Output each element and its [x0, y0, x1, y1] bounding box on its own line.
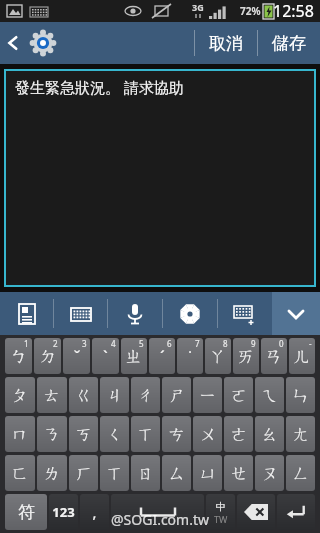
button[interactable]: ㄞ	[233, 338, 259, 374]
staticText: 取消	[209, 33, 243, 54]
staticText: 儲存	[272, 33, 306, 54]
staticText: ㄓ	[125, 346, 143, 367]
staticText: 發生緊急狀況。 請求協助	[15, 77, 184, 97]
button[interactable]: ㄊ	[37, 377, 67, 413]
button[interactable]: ㄜ	[224, 416, 253, 452]
staticText: ㄑ	[106, 424, 124, 445]
button[interactable]: ㄌ	[37, 455, 67, 491]
button[interactable]: ㄕ	[162, 377, 191, 413]
button[interactable]: ㄔ	[131, 377, 160, 413]
button[interactable]: ㄒ	[131, 416, 160, 452]
staticText: ㄝ	[230, 463, 248, 484]
staticText: ㄖ	[137, 463, 155, 484]
button[interactable]: Enter	[277, 494, 315, 530]
staticText: ㄙ	[168, 463, 186, 484]
staticText: ㄎ	[75, 424, 93, 445]
staticText: TW	[214, 513, 228, 525]
button[interactable]: 取消	[195, 22, 257, 64]
staticText: ㄣ	[292, 385, 310, 406]
button[interactable]: ˋ	[92, 338, 119, 374]
staticText: 3G	[192, 1, 204, 13]
button[interactable]: Space	[111, 494, 204, 530]
button[interactable]: ˇ	[63, 338, 90, 374]
button[interactable]: ㄇ	[5, 416, 35, 452]
button[interactable]: ㄅ	[5, 338, 32, 374]
button[interactable]: Hide keyboard	[272, 292, 320, 335]
button[interactable]: ㄏ	[69, 455, 98, 491]
staticText: ㄆ	[11, 385, 29, 406]
button[interactable]: ㄤ	[286, 416, 315, 452]
button[interactable]: ㄛ	[224, 377, 253, 413]
button[interactable]: ˊ	[149, 338, 175, 374]
staticText: ㄚ	[209, 346, 227, 367]
button[interactable]: 發生緊急狀況。 請求協助	[6, 71, 314, 285]
button[interactable]: ㄢ	[261, 338, 287, 374]
button[interactable]: ㄒ	[100, 455, 129, 491]
staticText: ㄨ	[199, 424, 217, 445]
button[interactable]: Settings	[163, 292, 217, 335]
button[interactable]: ㄓ	[121, 338, 147, 374]
button[interactable]: 符	[5, 494, 47, 530]
button[interactable]: ㄦ	[289, 338, 315, 374]
button[interactable]: ㄈ	[5, 455, 35, 491]
button[interactable]: Clipboard	[0, 292, 53, 335]
button[interactable]: Keyboard	[54, 292, 107, 335]
button[interactable]: ˙	[177, 338, 203, 374]
button[interactable]: ㄚ	[205, 338, 231, 374]
button[interactable]: ,	[80, 494, 109, 530]
staticText: ㄌ	[43, 463, 61, 484]
button[interactable]: 儲存	[258, 22, 320, 64]
staticText: ㄐ	[106, 385, 124, 406]
button[interactable]: ㄘ	[162, 416, 191, 452]
button[interactable]: ㄥ	[286, 455, 315, 491]
button[interactable]: Backspace	[237, 494, 275, 530]
staticText: ㄞ	[237, 346, 255, 367]
staticText: 符	[18, 502, 35, 523]
button[interactable]: Chinese / TW	[206, 494, 235, 530]
button[interactable]: ㄡ	[255, 455, 284, 491]
staticText: ㄒ	[137, 424, 155, 445]
staticText: ㄤ	[292, 424, 310, 445]
staticText: ˙	[188, 345, 192, 368]
button[interactable]: Back	[0, 22, 26, 64]
button[interactable]: ㄩ	[193, 455, 222, 491]
button[interactable]: ㄑ	[100, 416, 129, 452]
button[interactable]: ㄖ	[131, 455, 160, 491]
staticText: 2	[53, 338, 58, 349]
staticText: 12:58	[273, 0, 314, 22]
button[interactable]: Voice input	[108, 292, 162, 335]
staticText: ㄇ	[11, 424, 29, 445]
staticText: ㄏ	[75, 463, 93, 484]
button[interactable]: ㄧ	[193, 377, 222, 413]
staticText: ㄛ	[230, 385, 248, 406]
staticText: 8	[223, 338, 228, 349]
staticText: ㄘ	[168, 424, 186, 445]
staticText: 5	[139, 338, 144, 349]
button[interactable]: Settings	[26, 26, 60, 60]
button[interactable]: Floating keyboard	[218, 292, 272, 335]
button[interactable]: ㄎ	[69, 416, 98, 452]
button[interactable]: ㄝ	[224, 455, 253, 491]
staticText: ㄡ	[261, 463, 279, 484]
staticText: ˊ	[160, 345, 165, 368]
staticText: ㄜ	[230, 424, 248, 445]
button[interactable]: ㄙ	[162, 455, 191, 491]
button[interactable]: 123	[49, 494, 78, 530]
button[interactable]: ㄣ	[286, 377, 315, 413]
staticText: -	[309, 338, 312, 349]
button[interactable]: ㄐ	[100, 377, 129, 413]
button[interactable]: ㄆ	[5, 377, 35, 413]
staticText: ㄕ	[168, 385, 186, 406]
button[interactable]: ㄉ	[34, 338, 61, 374]
button[interactable]: ㄟ	[255, 377, 284, 413]
button[interactable]: ㄋ	[37, 416, 67, 452]
staticText: 123	[52, 503, 75, 521]
staticText: ㄠ	[261, 424, 279, 445]
staticText: ˇ	[73, 345, 81, 368]
button[interactable]: ㄨ	[193, 416, 222, 452]
button[interactable]: ㄠ	[255, 416, 284, 452]
staticText: 72%	[240, 4, 261, 18]
staticText: ˋ	[103, 345, 108, 368]
staticText: 3	[82, 338, 87, 349]
button[interactable]: ㄍ	[69, 377, 98, 413]
